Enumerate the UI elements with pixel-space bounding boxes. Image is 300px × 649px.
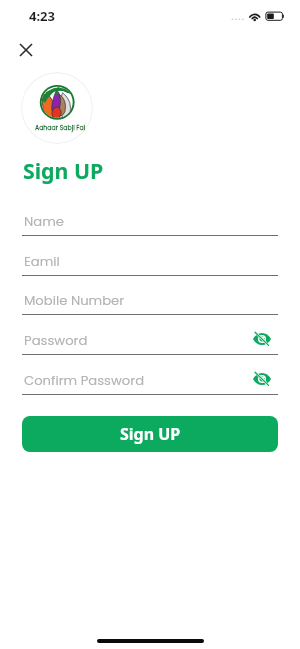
button[interactable]: Name [24, 208, 280, 234]
staticText: Name [24, 212, 64, 230]
button[interactable]: Confirm Password [24, 367, 280, 393]
button[interactable]: Show password [249, 366, 275, 392]
staticText: Password [24, 331, 88, 349]
staticText: Sign UP [23, 156, 104, 185]
staticText: 4:23 [29, 7, 55, 25]
button[interactable]: Password [24, 327, 280, 353]
staticText: Confirm Password [24, 371, 145, 389]
staticText: Mobile Number [24, 291, 125, 309]
button[interactable]: Close [12, 36, 40, 64]
button[interactable]: Mobile Number [24, 287, 280, 313]
button[interactable]: Sign UP [22, 416, 278, 452]
staticText: Sign UP [120, 423, 181, 445]
button[interactable]: Show password [249, 326, 275, 352]
staticText: Aahaar Sabji Fal [35, 123, 86, 132]
button[interactable]: Eamil [24, 248, 280, 274]
staticText: Eamil [24, 252, 60, 270]
